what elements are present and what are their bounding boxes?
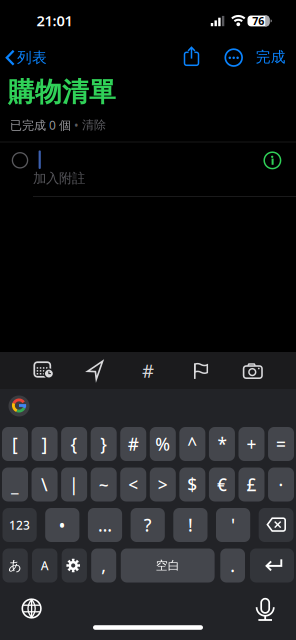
button[interactable]: < xyxy=(120,467,146,501)
staticText: 清除 xyxy=(82,118,106,132)
button[interactable]: . xyxy=(220,548,245,582)
staticText: + xyxy=(246,432,256,455)
staticText: $ xyxy=(187,473,197,496)
staticText: 已完成 0 個 xyxy=(10,117,71,133)
button[interactable]: 位置 xyxy=(73,352,117,389)
staticText: 123 xyxy=(9,517,30,533)
button[interactable]: 刪除 xyxy=(259,508,293,542)
button[interactable]: 清除 xyxy=(82,118,106,132)
staticText: 購物清單 xyxy=(8,76,116,108)
staticText: # xyxy=(128,432,139,455)
button[interactable]: ~ xyxy=(91,467,117,501)
button[interactable]: $ xyxy=(179,467,205,501)
button[interactable]: \ xyxy=(32,467,58,501)
staticText: } xyxy=(100,432,107,455)
button[interactable]: ] xyxy=(32,427,58,461)
staticText: \ xyxy=(41,473,48,496)
staticText: < xyxy=(128,473,138,496)
button[interactable]: [ xyxy=(2,427,28,461)
staticText: = xyxy=(276,432,286,455)
staticText: 加入附註 xyxy=(33,170,85,187)
button[interactable]: 更多 xyxy=(220,44,248,72)
staticText: 空白 xyxy=(156,558,180,573)
staticText: 完成 xyxy=(256,48,286,66)
button[interactable]: 下一個鍵盤 xyxy=(12,588,52,628)
button[interactable]: ? xyxy=(131,508,165,542)
staticText: … xyxy=(98,513,112,536)
staticText: { xyxy=(71,432,78,455)
staticText: 列表 xyxy=(17,49,47,67)
staticText: . xyxy=(230,554,235,577)
staticText: > xyxy=(158,473,168,496)
staticText: , xyxy=(101,554,106,577)
staticText: ^ xyxy=(187,432,197,455)
button[interactable]: Google xyxy=(4,391,34,421)
button[interactable]: ^ xyxy=(179,427,205,461)
staticText: A xyxy=(41,557,49,573)
button[interactable]: € xyxy=(209,467,235,501)
button[interactable]: A xyxy=(32,548,57,582)
staticText: | xyxy=(69,473,79,496)
button[interactable]: ' xyxy=(216,508,250,542)
button[interactable]: | xyxy=(61,467,87,501)
button[interactable]: • xyxy=(45,508,79,542)
staticText: 21:01 xyxy=(36,11,72,30)
button[interactable]: , xyxy=(91,548,116,582)
button[interactable]: £ xyxy=(238,467,264,501)
button[interactable]: 相機 xyxy=(231,352,275,389)
staticText: ' xyxy=(231,513,235,536)
button[interactable]: 換行 xyxy=(250,548,294,582)
staticText: • xyxy=(59,513,66,536)
button[interactable]: あ xyxy=(2,548,28,582)
button[interactable]: 空白 xyxy=(121,548,215,582)
staticText: _ xyxy=(11,473,19,496)
staticText: あ xyxy=(8,557,22,574)
button[interactable]: 123 xyxy=(2,508,37,542)
button[interactable]: 日期 xyxy=(20,352,64,389)
button[interactable]: 完成 xyxy=(249,44,293,70)
button[interactable]: { xyxy=(61,427,87,461)
button[interactable]: 標籤 xyxy=(126,352,170,389)
button[interactable]: 設定 xyxy=(62,548,87,582)
button[interactable]: 分享 xyxy=(177,42,205,70)
staticText: ! xyxy=(188,513,193,536)
button[interactable]: # xyxy=(120,427,146,461)
staticText: • xyxy=(71,117,82,133)
button[interactable]: ! xyxy=(173,508,207,542)
staticText: 76 xyxy=(252,14,264,28)
button[interactable]: · xyxy=(268,467,294,501)
button[interactable]: 旗標 xyxy=(178,352,222,389)
button[interactable]: 語音輸入 xyxy=(245,589,285,629)
staticText: · xyxy=(278,473,283,496)
button[interactable]: 完成提醒事項 xyxy=(8,148,32,172)
staticText: # xyxy=(142,358,154,383)
button[interactable]: 列表 xyxy=(0,44,52,70)
staticText: ] xyxy=(42,432,48,455)
button[interactable]: _ xyxy=(2,467,28,501)
staticText: % xyxy=(155,432,170,455)
button[interactable]: * xyxy=(209,427,235,461)
staticText: [ xyxy=(12,432,18,455)
button[interactable]: } xyxy=(91,427,117,461)
button[interactable]: > xyxy=(150,467,176,501)
button[interactable]: + xyxy=(238,427,264,461)
button[interactable]: 詳細資訊 xyxy=(259,147,285,173)
button[interactable]: … xyxy=(88,508,122,542)
staticText: * xyxy=(217,432,226,455)
staticText: £ xyxy=(246,473,256,496)
button[interactable]: = xyxy=(268,427,294,461)
staticText: ~ xyxy=(99,473,109,496)
button[interactable]: % xyxy=(150,427,176,461)
staticText: ? xyxy=(144,513,152,536)
staticText: € xyxy=(217,473,227,496)
